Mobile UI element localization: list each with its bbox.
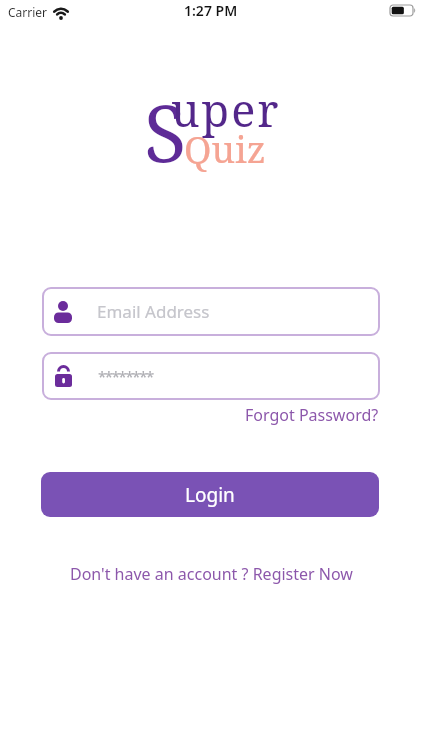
staticText: Email Address — [97, 300, 210, 323]
button[interactable]: Email Address — [42, 287, 380, 336]
button[interactable]: Login — [41, 472, 379, 517]
button[interactable]: ******** — [42, 352, 380, 400]
staticText: uper — [171, 79, 281, 140]
staticText: Carrier — [8, 4, 48, 20]
staticText: ******** — [98, 366, 153, 386]
staticText: Login — [185, 482, 235, 508]
staticText: S — [144, 79, 187, 185]
staticText: Quiz — [184, 123, 266, 173]
button[interactable]: Forgot Password? — [245, 404, 379, 426]
button[interactable]: Don't have an account ? Register Now — [70, 563, 353, 585]
staticText: 1:27 PM — [184, 1, 238, 20]
staticText: Don't have an account ? Register Now — [70, 563, 353, 585]
staticText: Forgot Password? — [245, 404, 379, 426]
